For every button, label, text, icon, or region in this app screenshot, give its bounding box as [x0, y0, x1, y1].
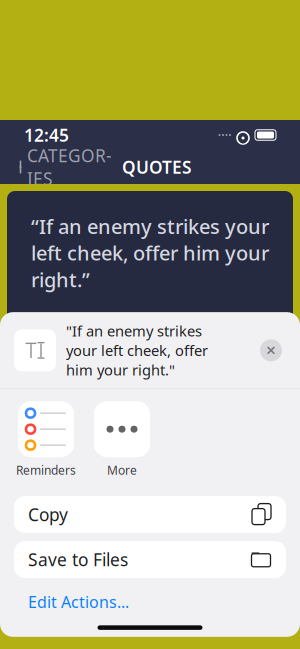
staticText: “If an enemy strikes your left cheek, of…	[31, 213, 269, 293]
staticText: Reminders	[16, 462, 76, 478]
staticText: Copy	[28, 503, 68, 526]
button[interactable]: More	[84, 401, 160, 478]
staticText: CATEGORIES	[27, 144, 112, 190]
staticText: “Take care: in a spiritual	[39, 413, 261, 440]
button[interactable]: Edit Actions...	[28, 586, 129, 617]
button[interactable]: Copy	[14, 496, 286, 533]
button[interactable]: Speak quote	[115, 323, 185, 369]
button[interactable]: Reminders	[8, 401, 84, 478]
button[interactable]: Save to Files	[14, 541, 286, 578]
staticText: Edit Actions...	[28, 591, 129, 612]
button[interactable]: Share	[213, 323, 283, 369]
staticText: "If an enemy strikes your left cheek, of…	[66, 321, 208, 379]
button[interactable]: Mark as read	[17, 323, 87, 369]
staticText: Save to Files	[28, 548, 128, 571]
staticText: QUOTES	[122, 155, 192, 178]
button[interactable]: Close	[256, 335, 286, 365]
staticText: 12:45	[24, 123, 69, 146]
button[interactable]: CATEGORIES	[6, 136, 112, 198]
staticText: More	[107, 462, 137, 478]
